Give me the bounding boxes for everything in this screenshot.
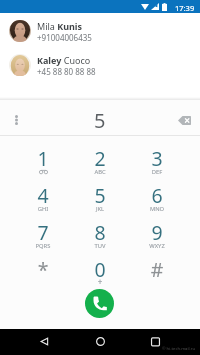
staticText: 5 [72, 182, 128, 209]
staticText: WXYZ [129, 242, 185, 250]
staticText: +45 88 80 88 88 [37, 66, 96, 77]
button[interactable]: 0 [72, 250, 128, 287]
button[interactable]: 9 [129, 213, 185, 250]
staticText: 9 [129, 219, 185, 246]
button[interactable]: 4 [15, 176, 71, 213]
staticText: # [129, 256, 185, 283]
button[interactable]: 5 [72, 176, 128, 213]
button[interactable]: 3 [129, 139, 185, 176]
staticText: TUV [72, 242, 128, 250]
staticText: PQRS [15, 242, 71, 250]
staticText: 5 [94, 107, 106, 133]
staticText: ABC [72, 168, 128, 176]
staticText: 2 [72, 145, 128, 172]
staticText: JKL [72, 205, 128, 213]
staticText: +91004006435 [37, 32, 92, 43]
button[interactable]: # [129, 250, 185, 287]
staticText: 17:39 [175, 3, 195, 13]
staticText: Kaley Cuoco [37, 54, 91, 66]
staticText: 1 [15, 145, 71, 172]
button[interactable]: 6 [129, 176, 185, 213]
button[interactable]: 7 [15, 213, 71, 250]
button[interactable]: Kaley Cuoco [0, 45, 200, 79]
button[interactable]: Mila Kunis [0, 11, 200, 45]
staticText: © hi-tech.mail.ru [162, 346, 196, 352]
staticText: 8 [72, 219, 128, 246]
button[interactable]: Recent apps [143, 328, 167, 354]
staticText: 3 [129, 145, 185, 172]
staticText: Mila Kunis [37, 20, 83, 32]
button[interactable]: More options [8, 110, 24, 130]
button[interactable]: 1 [15, 139, 71, 176]
staticText: + [72, 276, 128, 287]
staticText: 7 [15, 219, 71, 246]
staticText: GHI [15, 205, 71, 213]
button[interactable]: Home [88, 328, 112, 354]
staticText: 0 [72, 256, 128, 283]
button[interactable]: Back [31, 328, 57, 354]
staticText: MNO [129, 205, 185, 213]
button[interactable]: Call [85, 289, 114, 318]
staticText: 4 [15, 182, 71, 209]
button[interactable]: * [15, 250, 71, 287]
staticText: 6 [129, 182, 185, 209]
staticText: DEF [129, 168, 185, 176]
button[interactable]: Backspace [173, 110, 195, 130]
staticText: * [15, 256, 71, 283]
button[interactable]: 8 [72, 213, 128, 250]
button[interactable]: 2 [72, 139, 128, 176]
